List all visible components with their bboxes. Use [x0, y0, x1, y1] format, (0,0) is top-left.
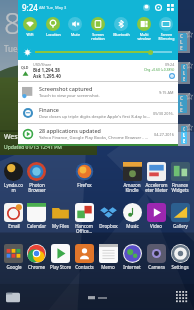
staticText: Bid 1,294.38 [33, 67, 60, 73]
button[interactable]: Video [144, 202, 168, 230]
staticText: 28 applications updated [39, 127, 101, 134]
button[interactable]: User [143, 4, 150, 11]
button[interactable]: Settings [155, 4, 162, 11]
staticText: 8 [4, 2, 22, 43]
button[interactable]: Mute [64, 17, 86, 37]
other: Email [4, 203, 23, 222]
button[interactable]: TestFlight: There is an update [102, 95, 187, 113]
staticText: AM Tue, May 3 [39, 5, 67, 10]
other: Music [123, 203, 142, 222]
button[interactable]: Calendar [25, 202, 48, 230]
staticText: CLEAR [180, 33, 185, 51]
button[interactable]: 28 applications updated [22, 126, 174, 142]
other: Bluetooth [114, 17, 128, 31]
button[interactable]: Edit quick settings [167, 4, 174, 11]
button[interactable]: Finance [22, 105, 174, 121]
button[interactable]: Screen rotation [87, 17, 109, 42]
button[interactable] [96, 161, 120, 182]
staticText: Gallery [173, 223, 188, 229]
button[interactable]: Lynda.com [2, 161, 25, 195]
button[interactable]: Photon Browser [25, 161, 48, 195]
button[interactable]: Camera [144, 243, 168, 271]
other: Accelerom eter Meter [147, 162, 166, 181]
other: Play Store [51, 244, 70, 263]
staticText: Updated 01/13 12:41 PM [4, 144, 62, 151]
button[interactable]: Google [2, 243, 25, 271]
button[interactable]: Gallery [168, 202, 192, 230]
button[interactable]: My Files [6, 290, 20, 304]
staticText: Memo [101, 264, 115, 270]
button[interactable]: Memo [96, 243, 120, 271]
staticText: Settings [171, 264, 189, 270]
button[interactable]: Accelerom eter Meter [144, 161, 168, 195]
button[interactable]: Finance Widgets [168, 161, 192, 195]
button[interactable]: Hancom Office... [72, 202, 96, 236]
button[interactable]: Multi window [133, 17, 155, 42]
staticText: Video [150, 223, 162, 229]
staticText: Yahoo Finance, Google Play Books, Chrome… [39, 135, 151, 141]
button[interactable]: Contacts [72, 243, 96, 271]
button[interactable]: Chrome [25, 243, 48, 271]
other: Lynda.com [4, 162, 23, 181]
button[interactable]: Email [2, 202, 25, 230]
button[interactable] [148, 50, 153, 55]
staticText: Finance Widgets [171, 182, 189, 194]
staticText: Dow closes up triple digits despite Appl… [39, 114, 150, 120]
staticText: Finance [39, 106, 59, 113]
staticText: Tue, [4, 43, 20, 54]
button[interactable]: Internet [120, 243, 144, 271]
button[interactable]: Settings [168, 243, 192, 271]
staticText: TestFlight: There is an update [102, 39, 176, 46]
other: Internet [123, 244, 142, 263]
staticText: My Files [52, 223, 69, 229]
button[interactable]: Screen Mirroring [155, 17, 177, 42]
other: Gallery [171, 203, 190, 222]
button[interactable]: Play Store [48, 243, 72, 271]
other: Multi window [137, 17, 151, 31]
staticText: CLEAR [180, 95, 185, 113]
staticText: Camera [148, 264, 165, 270]
staticText: 9:24 [22, 2, 38, 13]
staticText: Chrome [28, 264, 45, 270]
button[interactable]: My Files [48, 202, 72, 230]
staticText: Calendar [27, 223, 46, 229]
other: Amazon Kindle [123, 162, 142, 181]
staticText: Play Store [50, 264, 71, 270]
staticText: Touch to view your screenshot. [39, 93, 100, 99]
other: Camera [147, 244, 166, 263]
staticText: Chg +0.60 (+0.38%) [144, 67, 175, 72]
staticText: Screen rotation [91, 32, 105, 42]
staticText: Contacts [75, 264, 94, 270]
other: Finance Widgets [171, 162, 190, 181]
other: Location [46, 17, 60, 31]
button[interactable]: Knorf Gold Level 3.2.7 released [102, 64, 187, 82]
button[interactable]: Knorf Gold Level 3.2.7 released [102, 126, 187, 144]
staticText: Accelerom eter Meter [145, 182, 168, 194]
other: Screen Mirroring [159, 17, 173, 31]
button[interactable]: Bluetooth [110, 17, 132, 37]
button[interactable]: Stock settings [169, 73, 175, 79]
button[interactable]: WiFi [19, 17, 41, 37]
other: Mute [68, 17, 82, 31]
button[interactable]: TestFlight: There is an update [102, 33, 187, 51]
staticText: Dropbox [99, 223, 118, 229]
button[interactable]: Music [120, 202, 144, 230]
staticText: 9:15 AM [159, 90, 174, 95]
other: Google [4, 244, 23, 263]
button[interactable]: QLD [21, 62, 175, 79]
button[interactable]: Location [42, 17, 64, 37]
other: Chrome [27, 244, 46, 263]
staticText: 09:24 [165, 62, 175, 67]
button[interactable]: Firefox [72, 161, 96, 189]
other: My Files [51, 203, 70, 222]
staticText: CLEAR [183, 64, 185, 82]
button[interactable]: Dropbox [96, 202, 120, 230]
button[interactable]: Screenshot captured [22, 84, 174, 100]
other: Dropbox [99, 203, 118, 222]
staticText: Email [8, 223, 20, 229]
button[interactable]: Apps [176, 291, 188, 303]
other: Firefox [75, 162, 94, 181]
staticText: Mute [71, 32, 80, 37]
button[interactable]: Amazon Kindle [120, 161, 144, 195]
